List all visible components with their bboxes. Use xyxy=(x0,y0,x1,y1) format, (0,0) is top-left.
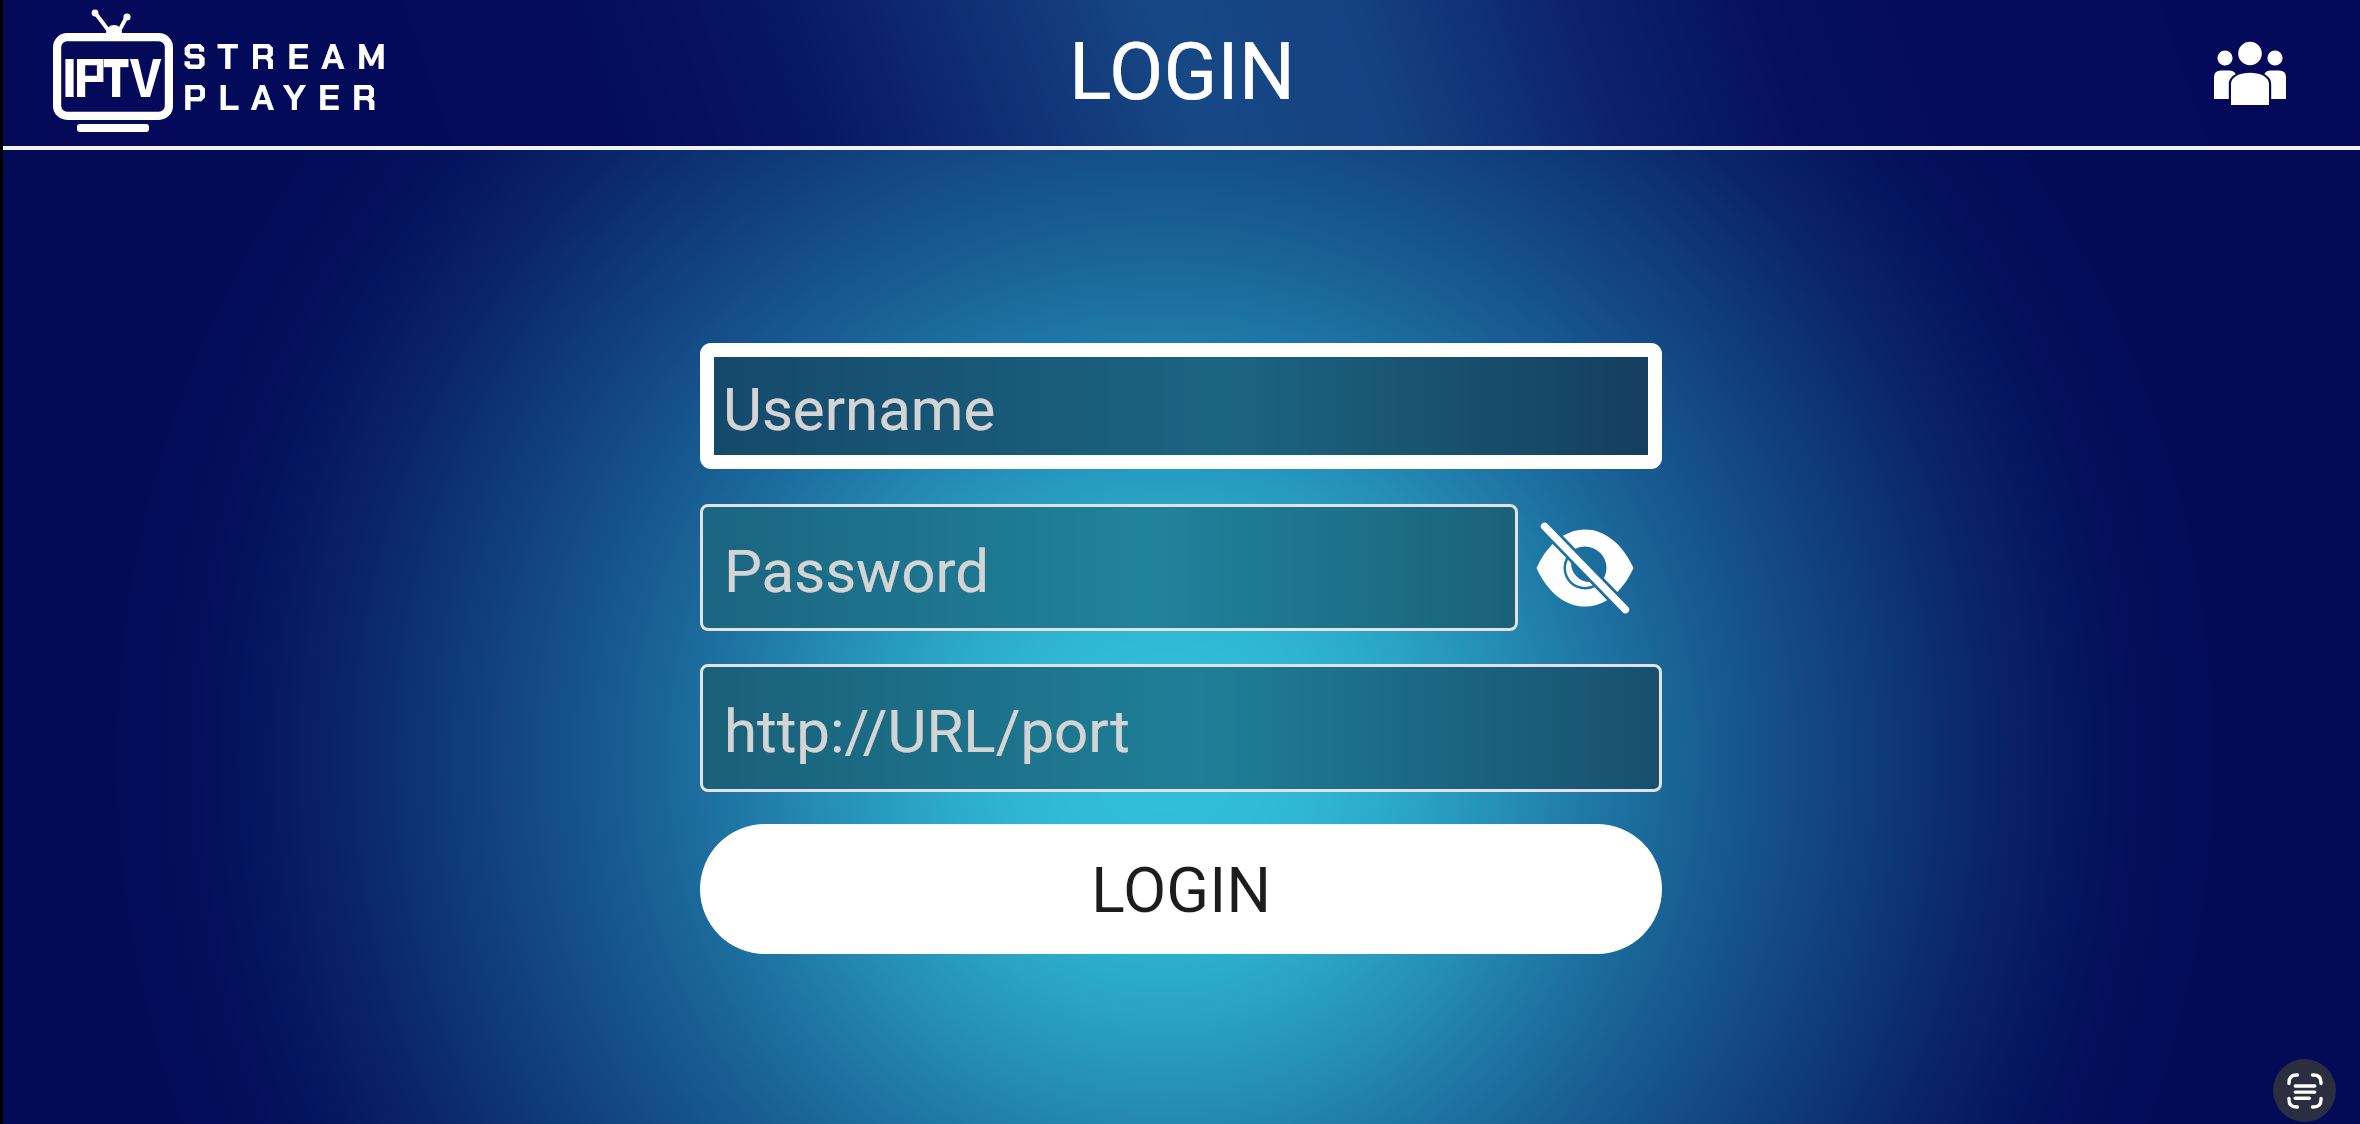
button[interactable]: Select text xyxy=(2273,1059,2336,1122)
staticText: LOGIN xyxy=(1069,26,1296,119)
button[interactable]: LOGIN xyxy=(700,824,1662,954)
staticText: http://URL/port xyxy=(724,696,1130,766)
staticText: STREAM xyxy=(183,33,399,80)
staticText: LOGIN xyxy=(1091,854,1272,928)
staticText: Password xyxy=(724,536,990,606)
button[interactable]: Users xyxy=(2190,13,2310,133)
button[interactable]: http://URL/port xyxy=(700,664,1662,792)
staticText: PLAYER xyxy=(183,74,389,121)
staticText: Username xyxy=(723,374,996,444)
button[interactable]: Show password xyxy=(1522,505,1647,630)
button[interactable]: Username xyxy=(714,357,1648,455)
button[interactable]: Password xyxy=(700,504,1518,631)
